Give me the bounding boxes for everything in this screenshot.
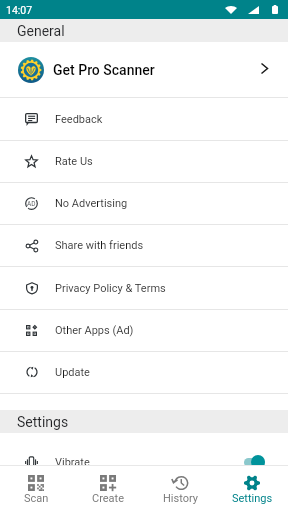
staticText: Update: [55, 366, 90, 379]
staticText: 14:07: [6, 4, 33, 16]
button[interactable]: Privacy Policy & Terms: [0, 267, 288, 309]
button[interactable]: Other Apps (Ad): [0, 310, 288, 351]
staticText: Settings: [17, 414, 69, 430]
staticText: Get Pro Scanner: [53, 62, 155, 78]
button[interactable]: Scan: [0, 466, 72, 512]
staticText: Scan: [24, 492, 49, 505]
button[interactable]: AD: [0, 183, 288, 224]
button[interactable]: Get Pro Scanner: [0, 42, 288, 97]
staticText: No Advertising: [55, 197, 128, 210]
button[interactable]: Share with friends: [0, 225, 288, 266]
staticText: AD: [27, 200, 36, 208]
staticText: Feedback: [55, 113, 103, 126]
staticText: General: [17, 23, 65, 39]
staticText: History: [163, 492, 198, 505]
staticText: Share with friends: [55, 239, 144, 252]
staticText: Privacy Policy & Terms: [55, 282, 166, 295]
button[interactable]: Feedback: [0, 98, 288, 140]
button[interactable]: History: [144, 466, 216, 512]
button[interactable]: Rate Us: [0, 141, 288, 182]
button[interactable]: Create: [72, 466, 144, 512]
button[interactable]: Settings: [216, 466, 288, 512]
staticText: Create: [92, 492, 125, 505]
staticText: Settings: [232, 492, 273, 505]
staticText: Rate Us: [55, 155, 93, 168]
staticText: Other Apps (Ad): [55, 324, 134, 337]
button[interactable]: Vibrate: [0, 433, 288, 491]
button[interactable]: Update: [0, 352, 288, 393]
staticText: Vibrate: [55, 456, 90, 469]
